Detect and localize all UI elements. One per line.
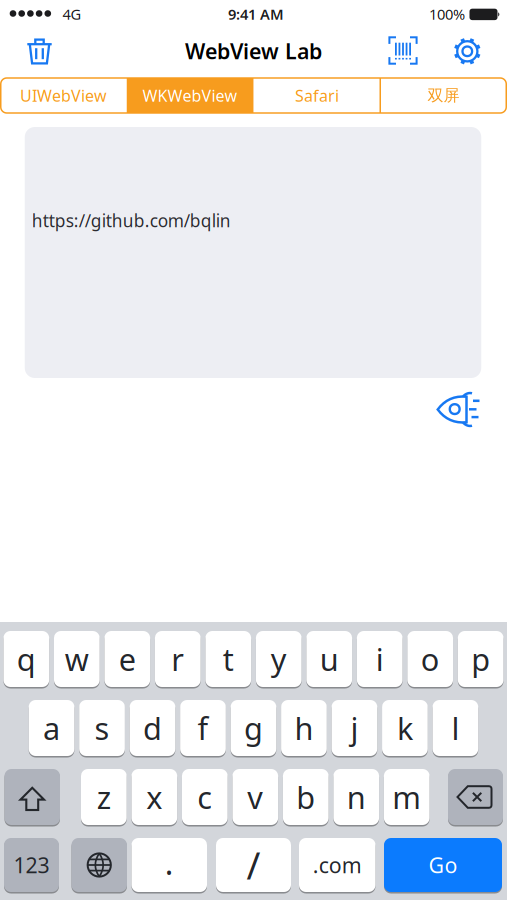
button[interactable]: y: [256, 630, 302, 688]
staticText: w: [65, 639, 89, 679]
button[interactable]: /: [216, 837, 291, 893]
staticText: d: [143, 708, 162, 748]
staticText: j: [350, 708, 358, 748]
button[interactable]: Next keyboard: [71, 837, 127, 893]
staticText: Go: [428, 851, 457, 879]
button[interactable]: Safari: [254, 78, 380, 113]
button[interactable]: Delete: [448, 768, 503, 826]
staticText: https://github.com/bqlin: [32, 209, 231, 232]
button[interactable]: j: [332, 699, 377, 757]
staticText: f: [197, 708, 208, 748]
staticText: b: [296, 777, 315, 817]
button[interactable]: .: [131, 837, 207, 893]
button[interactable]: f: [180, 699, 226, 757]
staticText: UIWebView: [20, 85, 107, 106]
staticText: s: [94, 708, 109, 748]
staticText: p: [471, 639, 490, 679]
staticText: z: [97, 777, 111, 817]
button[interactable]: d: [130, 699, 175, 757]
button[interactable]: v: [232, 768, 278, 826]
button[interactable]: i: [357, 630, 403, 688]
staticText: 100%: [429, 4, 465, 24]
button[interactable]: Scan: [383, 32, 423, 68]
button[interactable]: g: [231, 699, 276, 757]
staticText: .: [165, 841, 174, 884]
staticText: WKWebView: [143, 85, 238, 106]
button[interactable]: q: [3, 630, 49, 688]
button[interactable]: h: [281, 699, 327, 757]
button[interactable]: r: [155, 630, 201, 688]
button[interactable]: b: [283, 768, 329, 826]
button[interactable]: u: [306, 630, 352, 688]
staticText: h: [294, 708, 313, 748]
staticText: t: [223, 639, 234, 679]
button[interactable]: 双屏: [381, 78, 507, 113]
button[interactable]: Load URL: [433, 385, 483, 429]
staticText: /: [246, 840, 260, 890]
staticText: y: [271, 639, 287, 679]
button[interactable]: t: [205, 630, 251, 688]
staticText: r: [171, 639, 184, 679]
staticText: v: [247, 777, 263, 817]
staticText: c: [197, 777, 212, 817]
button[interactable]: w: [54, 630, 100, 688]
button[interactable]: p: [458, 630, 503, 688]
button[interactable]: e: [104, 630, 150, 688]
button[interactable]: Shift: [4, 768, 60, 826]
button[interactable]: Go: [384, 837, 502, 893]
button[interactable]: l: [432, 699, 478, 757]
button[interactable]: x: [131, 768, 177, 826]
staticText: x: [146, 777, 162, 817]
staticText: g: [244, 708, 263, 748]
staticText: a: [43, 708, 60, 748]
staticText: 4G: [62, 4, 81, 24]
button[interactable]: n: [333, 768, 379, 826]
button[interactable]: s: [79, 699, 125, 757]
staticText: .com: [313, 851, 362, 879]
staticText: n: [347, 777, 366, 817]
button[interactable]: Settings: [448, 33, 486, 69]
staticText: 双屏: [428, 86, 460, 105]
staticText: m: [392, 777, 421, 817]
button[interactable]: UIWebView: [0, 78, 126, 113]
button[interactable]: z: [81, 768, 127, 826]
staticText: Safari: [295, 85, 339, 106]
button[interactable]: a: [29, 699, 74, 757]
staticText: i: [376, 639, 384, 679]
button[interactable]: o: [407, 630, 453, 688]
staticText: o: [421, 639, 440, 679]
staticText: q: [17, 639, 36, 679]
staticText: WebView Lab: [185, 37, 322, 65]
staticText: 123: [13, 851, 49, 879]
staticText: e: [119, 639, 136, 679]
button[interactable]: m: [384, 768, 430, 826]
button[interactable]: .com: [299, 837, 375, 893]
staticText: k: [397, 708, 413, 748]
staticText: l: [451, 708, 459, 748]
staticText: u: [320, 639, 339, 679]
button[interactable]: k: [382, 699, 428, 757]
staticText: 9:41 AM: [228, 4, 284, 24]
button[interactable]: c: [182, 768, 228, 826]
button[interactable]: Clear: [17, 33, 61, 69]
button[interactable]: 123: [4, 837, 59, 893]
button[interactable]: WKWebView: [127, 78, 253, 113]
